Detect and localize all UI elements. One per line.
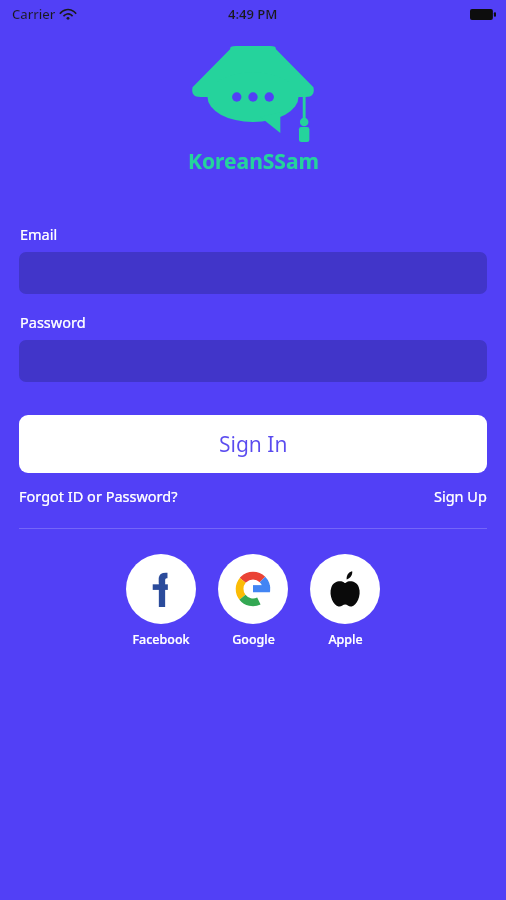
staticText: Sign In xyxy=(219,430,288,459)
staticText: Google xyxy=(232,631,275,648)
staticText: Apple xyxy=(328,631,363,648)
staticText: KoreanSSam xyxy=(188,147,319,176)
staticText: 4:49 PM xyxy=(228,5,278,23)
staticText: Email xyxy=(20,224,58,244)
button[interactable]: Sign in with Google xyxy=(218,554,288,648)
staticText: Sign Up xyxy=(434,486,487,506)
button[interactable]: Sign Up xyxy=(434,486,487,506)
button[interactable]: Forgot ID or Password? xyxy=(19,486,178,506)
staticText: Password xyxy=(20,312,86,332)
button[interactable]: Sign In xyxy=(19,415,487,473)
staticText: Carrier xyxy=(12,5,56,23)
button[interactable]: Sign in with Facebook xyxy=(126,554,196,648)
staticText: Facebook xyxy=(132,631,190,648)
staticText: Forgot ID or Password? xyxy=(19,486,178,506)
button[interactable]: Sign in with Apple xyxy=(310,554,380,648)
